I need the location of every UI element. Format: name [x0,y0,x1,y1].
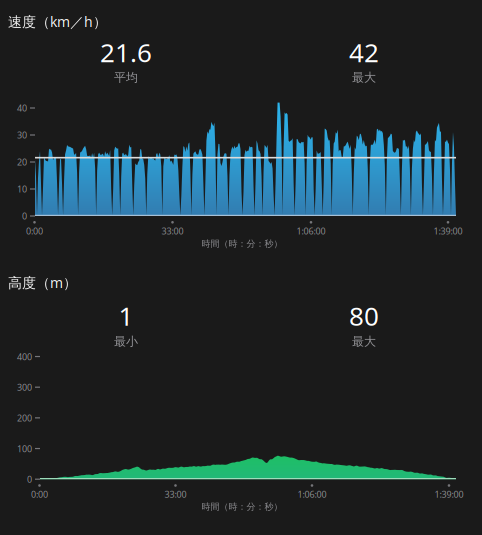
staticText: 300 [17,381,32,393]
staticText: 21.6 [100,34,152,70]
staticText: 400 [17,350,32,363]
staticText: 速度（km／h） [8,12,107,31]
staticText: 33:00 [164,488,186,500]
staticText: 0 [22,210,27,222]
staticText: 0 [27,473,32,485]
staticText: 100 [17,442,32,455]
staticText: 時間（時：分：秒） [201,501,282,512]
staticText: 最小 [114,334,138,349]
staticText: 42 [349,34,379,70]
staticText: 30 [17,129,27,141]
staticText: 平均 [114,70,138,85]
staticText: 10 [17,183,27,195]
staticText: 0:00 [26,225,43,237]
staticText: 最大 [352,334,376,349]
staticText: 33:00 [161,225,183,237]
staticText: 1:39:00 [434,488,463,500]
staticText: 80 [349,298,379,333]
staticText: 最大 [352,70,376,85]
staticText: 1:06:00 [296,225,325,237]
staticText: 高度（m） [8,273,77,292]
staticText: 1 [118,298,133,333]
staticText: 0:00 [31,488,48,500]
staticText: 200 [17,412,32,424]
staticText: 1:39:00 [433,225,462,237]
staticText: 時間（時：分：秒） [201,238,282,249]
staticText: 1:06:00 [297,488,326,500]
staticText: 40 [17,102,27,114]
staticText: 20 [17,156,27,168]
